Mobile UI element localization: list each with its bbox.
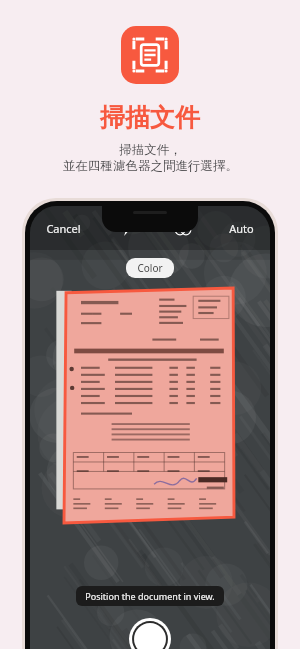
button[interactable]: Auto — [227, 217, 256, 240]
button[interactable]: Cancel — [44, 217, 83, 240]
staticText: Color — [137, 261, 163, 275]
button[interactable]: Scan documents app icon — [121, 26, 179, 84]
button[interactable]: Shutter — [129, 618, 171, 649]
button[interactable]: Filters — [170, 215, 196, 241]
button[interactable]: Color — [126, 258, 174, 278]
staticText: 掃描文件， 並在四種濾色器之間進行選擇。 — [63, 142, 238, 174]
staticText: Cancel — [46, 221, 81, 236]
staticText: Position the document in view. — [85, 590, 215, 602]
staticText: Auto — [229, 221, 254, 236]
button[interactable]: Flash — [113, 215, 139, 241]
staticText: 掃描文件 — [100, 102, 200, 133]
